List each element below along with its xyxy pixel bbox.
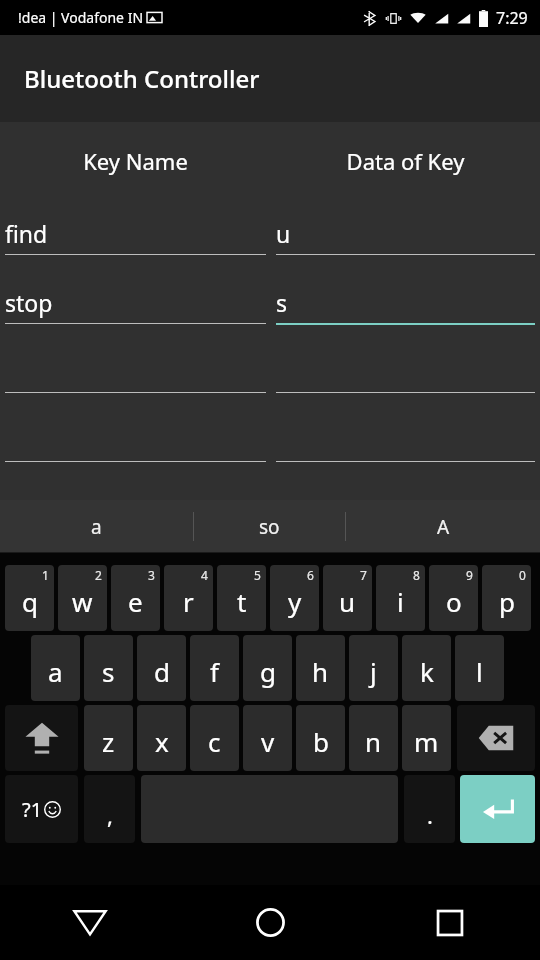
- staticText: k: [420, 654, 434, 689]
- staticText: 7: [360, 567, 367, 583]
- button[interactable]: [276, 346, 535, 398]
- staticText: so: [259, 514, 280, 540]
- button[interactable]: ,: [84, 775, 135, 843]
- button[interactable]: q: [5, 565, 54, 631]
- staticText: g: [260, 654, 276, 689]
- staticText: ?1: [22, 796, 43, 823]
- staticText: s: [102, 654, 115, 689]
- button[interactable]: p: [482, 565, 531, 631]
- button[interactable]: g: [243, 635, 292, 701]
- staticText: stop: [5, 287, 53, 318]
- staticText: ,: [107, 800, 113, 830]
- staticText: 0: [519, 567, 526, 583]
- staticText: j: [370, 654, 377, 689]
- staticText: a: [48, 654, 63, 689]
- staticText: o: [446, 584, 462, 619]
- staticText: 9: [466, 567, 473, 583]
- button[interactable]: s: [276, 277, 535, 329]
- button[interactable]: b: [296, 705, 345, 771]
- staticText: Data of Key: [276, 146, 535, 176]
- staticText: 8: [413, 567, 420, 583]
- button[interactable]: v: [243, 705, 292, 771]
- button[interactable]: A: [346, 500, 540, 553]
- button[interactable]: l: [455, 635, 504, 701]
- button[interactable]: u: [323, 565, 372, 631]
- button[interactable]: o: [429, 565, 478, 631]
- staticText: 1: [42, 567, 49, 583]
- button[interactable]: y: [270, 565, 319, 631]
- button[interactable]: Back: [0, 885, 180, 960]
- staticText: a: [91, 514, 102, 540]
- staticText: 2: [95, 567, 102, 583]
- button[interactable]: stop: [5, 277, 266, 329]
- button[interactable]: f: [190, 635, 239, 701]
- button[interactable]: z: [84, 705, 133, 771]
- button[interactable]: .: [404, 775, 455, 843]
- staticText: 3: [148, 567, 155, 583]
- staticText: q: [22, 584, 38, 619]
- staticText: p: [499, 584, 515, 619]
- staticText: x: [155, 724, 169, 759]
- button[interactable]: w: [58, 565, 107, 631]
- staticText: find: [5, 218, 48, 249]
- button[interactable]: e: [111, 565, 160, 631]
- staticText: u: [276, 218, 291, 249]
- staticText: s: [276, 287, 288, 318]
- staticText: Bluetooth Controller: [24, 62, 260, 95]
- staticText: w: [72, 584, 93, 619]
- button[interactable]: d: [137, 635, 186, 701]
- button[interactable]: h: [296, 635, 345, 701]
- staticText: t: [237, 584, 247, 619]
- button[interactable]: x: [137, 705, 186, 771]
- button[interactable]: [5, 346, 266, 398]
- staticText: l: [476, 654, 483, 689]
- staticText: b: [313, 724, 329, 759]
- button[interactable]: m: [402, 705, 451, 771]
- button[interactable]: u: [276, 208, 535, 260]
- staticText: i: [397, 584, 404, 619]
- staticText: .: [427, 800, 433, 830]
- staticText: 7:29: [496, 7, 528, 29]
- button[interactable]: n: [349, 705, 398, 771]
- staticText: m: [414, 724, 439, 759]
- button[interactable]: Recent apps: [360, 885, 540, 960]
- staticText: A: [437, 514, 450, 540]
- staticText: e: [128, 584, 143, 619]
- button[interactable]: find: [5, 208, 266, 260]
- button[interactable]: Home: [180, 885, 360, 960]
- button[interactable]: [5, 415, 266, 467]
- button[interactable]: a: [31, 635, 80, 701]
- staticText: d: [154, 654, 170, 689]
- button[interactable]: i: [376, 565, 425, 631]
- button[interactable]: a: [0, 500, 193, 553]
- button[interactable]: s: [84, 635, 133, 701]
- staticText: h: [312, 654, 329, 689]
- button[interactable]: Enter: [460, 775, 535, 843]
- button[interactable]: j: [349, 635, 398, 701]
- button[interactable]: so: [194, 500, 345, 553]
- staticText: !dea | Vodafone IN: [18, 8, 144, 27]
- staticText: 6: [307, 567, 314, 583]
- button[interactable]: Shift: [5, 705, 78, 771]
- staticText: z: [102, 724, 115, 759]
- button[interactable]: t: [217, 565, 266, 631]
- staticText: u: [339, 584, 356, 619]
- button[interactable]: Backspace: [457, 705, 535, 771]
- staticText: f: [210, 654, 219, 689]
- staticText: n: [365, 724, 382, 759]
- button[interactable]: c: [190, 705, 239, 771]
- staticText: 5: [254, 567, 261, 583]
- button[interactable]: r: [164, 565, 213, 631]
- staticText: y: [288, 584, 302, 619]
- button[interactable]: Symbols and emoji: [5, 775, 78, 843]
- button[interactable]: [276, 415, 535, 467]
- staticText: r: [183, 584, 194, 619]
- button[interactable]: k: [402, 635, 451, 701]
- staticText: v: [261, 724, 275, 759]
- staticText: 4: [201, 567, 208, 583]
- staticText: Key Name: [5, 146, 266, 176]
- staticText: c: [208, 724, 221, 759]
